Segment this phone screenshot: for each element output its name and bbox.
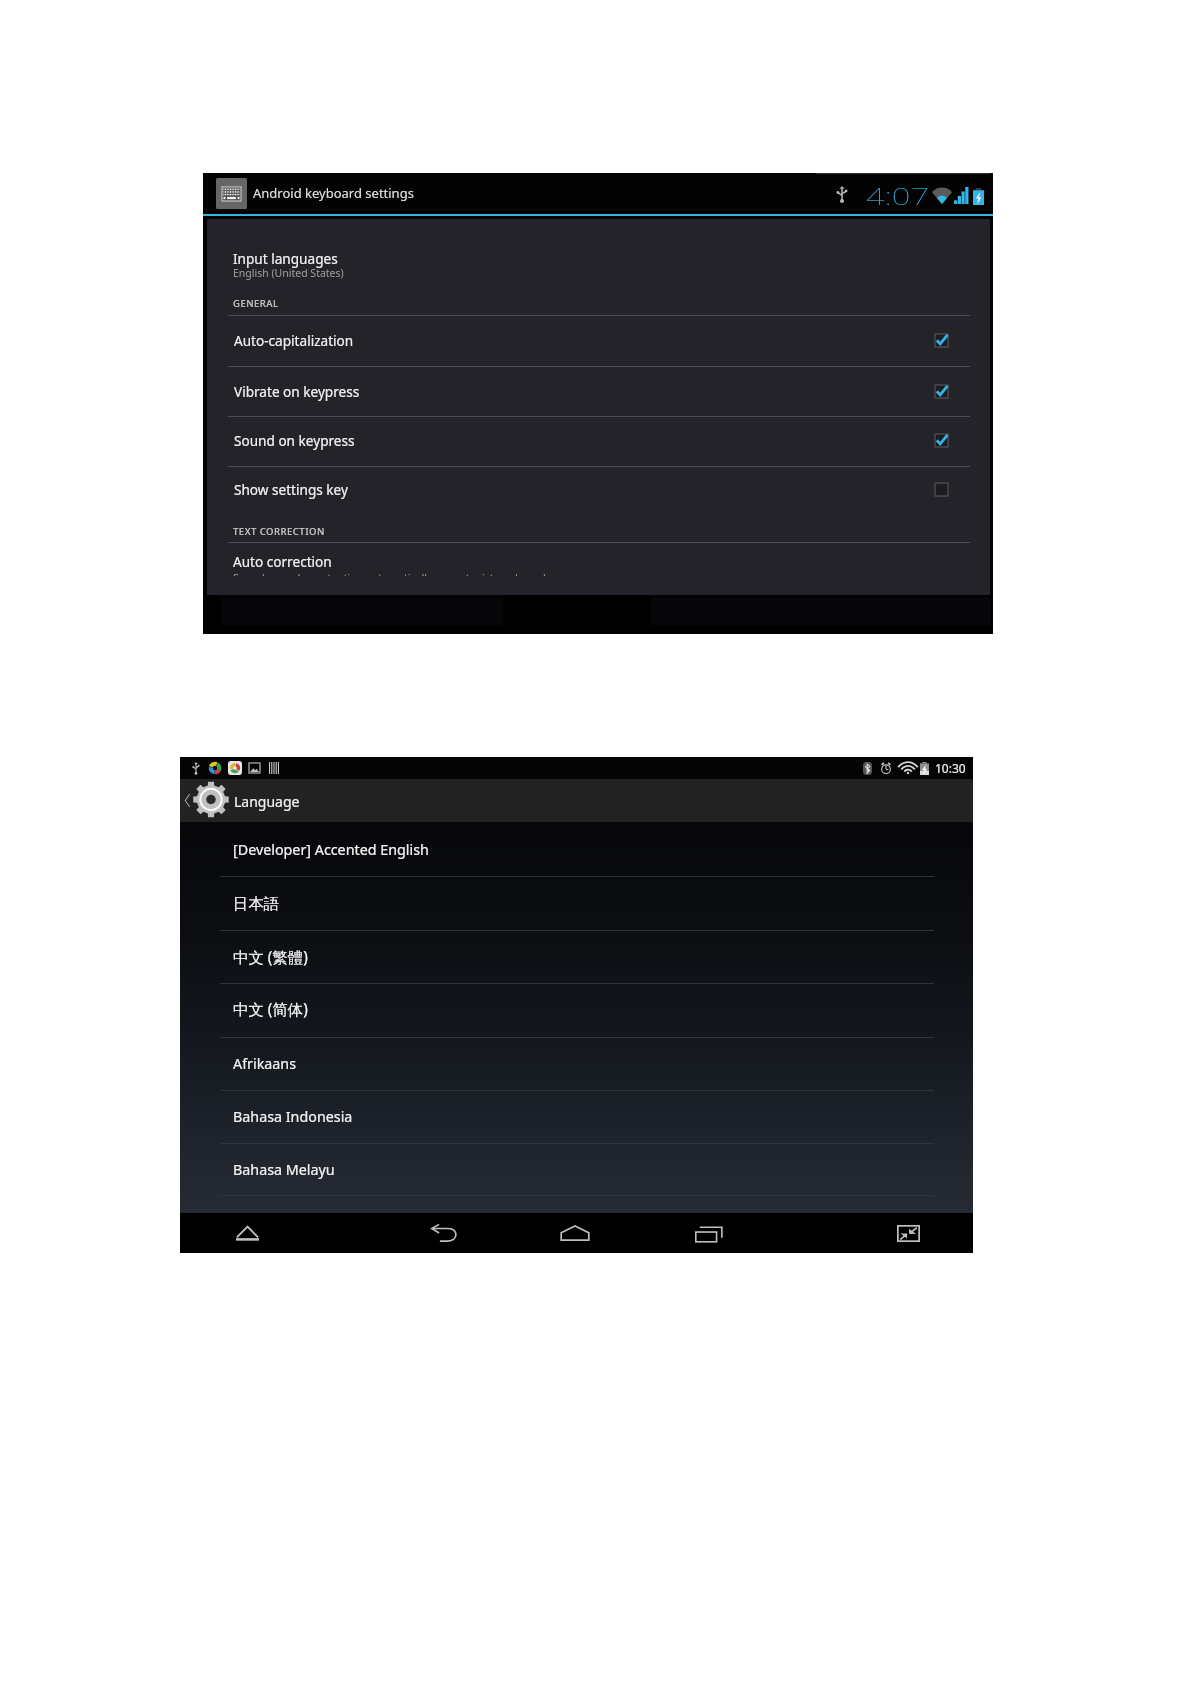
staticText: GENERAL bbox=[233, 297, 279, 310]
staticText: Input languages bbox=[233, 249, 338, 268]
button[interactable]: Back bbox=[409, 1213, 479, 1253]
button[interactable]: Home bbox=[540, 1213, 610, 1253]
button[interactable]: Recent apps bbox=[674, 1213, 744, 1253]
staticText: Auto-capitalization bbox=[234, 331, 354, 350]
staticText: Sound on keypress bbox=[234, 431, 355, 450]
staticText: 中文 (简体) bbox=[233, 999, 308, 1020]
staticText: Spacebar and punctuation automatically c… bbox=[233, 571, 551, 585]
button[interactable]: Auto-capitalization bbox=[228, 318, 970, 363]
staticText: Bahasa Indonesia bbox=[233, 1107, 353, 1126]
button[interactable]: 日本語 bbox=[180, 876, 973, 930]
button[interactable]: Navigate up bbox=[212, 1213, 282, 1253]
staticText: Bahasa Melayu bbox=[233, 1160, 335, 1179]
button[interactable] bbox=[228, 546, 970, 595]
button[interactable]: Bahasa Melayu bbox=[180, 1143, 973, 1195]
button[interactable]: Afrikaans bbox=[180, 1037, 973, 1090]
staticText: 日本語 bbox=[233, 894, 280, 913]
button[interactable]: Android keyboard bbox=[216, 178, 247, 209]
button[interactable]: 中文 (简体) bbox=[180, 983, 973, 1036]
staticText: 中文 (繁體) bbox=[233, 947, 308, 968]
button[interactable]: 中文 (繁體) bbox=[180, 930, 973, 984]
button[interactable]: Vibrate on keypress bbox=[228, 368, 970, 414]
staticText: [Developer] Accented English bbox=[233, 840, 429, 859]
staticText: English (United States) bbox=[233, 266, 344, 280]
button[interactable]: Shrink bbox=[873, 1213, 943, 1253]
staticText: Android keyboard settings bbox=[253, 184, 414, 202]
staticText: TEXT CORRECTION bbox=[233, 525, 325, 538]
button[interactable]: Sound on keypress bbox=[228, 418, 970, 463]
button[interactable]: Navigate up bbox=[182, 779, 234, 822]
staticText: Afrikaans bbox=[233, 1054, 297, 1073]
staticText: Vibrate on keypress bbox=[234, 382, 360, 401]
staticText: Language bbox=[234, 792, 300, 811]
button[interactable] bbox=[228, 243, 970, 285]
staticText: 4:07 bbox=[866, 180, 930, 211]
button[interactable]: Show settings key bbox=[228, 468, 970, 511]
staticText: Auto correction bbox=[233, 552, 332, 571]
staticText: Show settings key bbox=[234, 480, 348, 499]
staticText: 10:30 bbox=[935, 760, 966, 776]
button[interactable]: [Developer] Accented English bbox=[180, 822, 973, 876]
button[interactable]: Bahasa Indonesia bbox=[180, 1090, 973, 1143]
